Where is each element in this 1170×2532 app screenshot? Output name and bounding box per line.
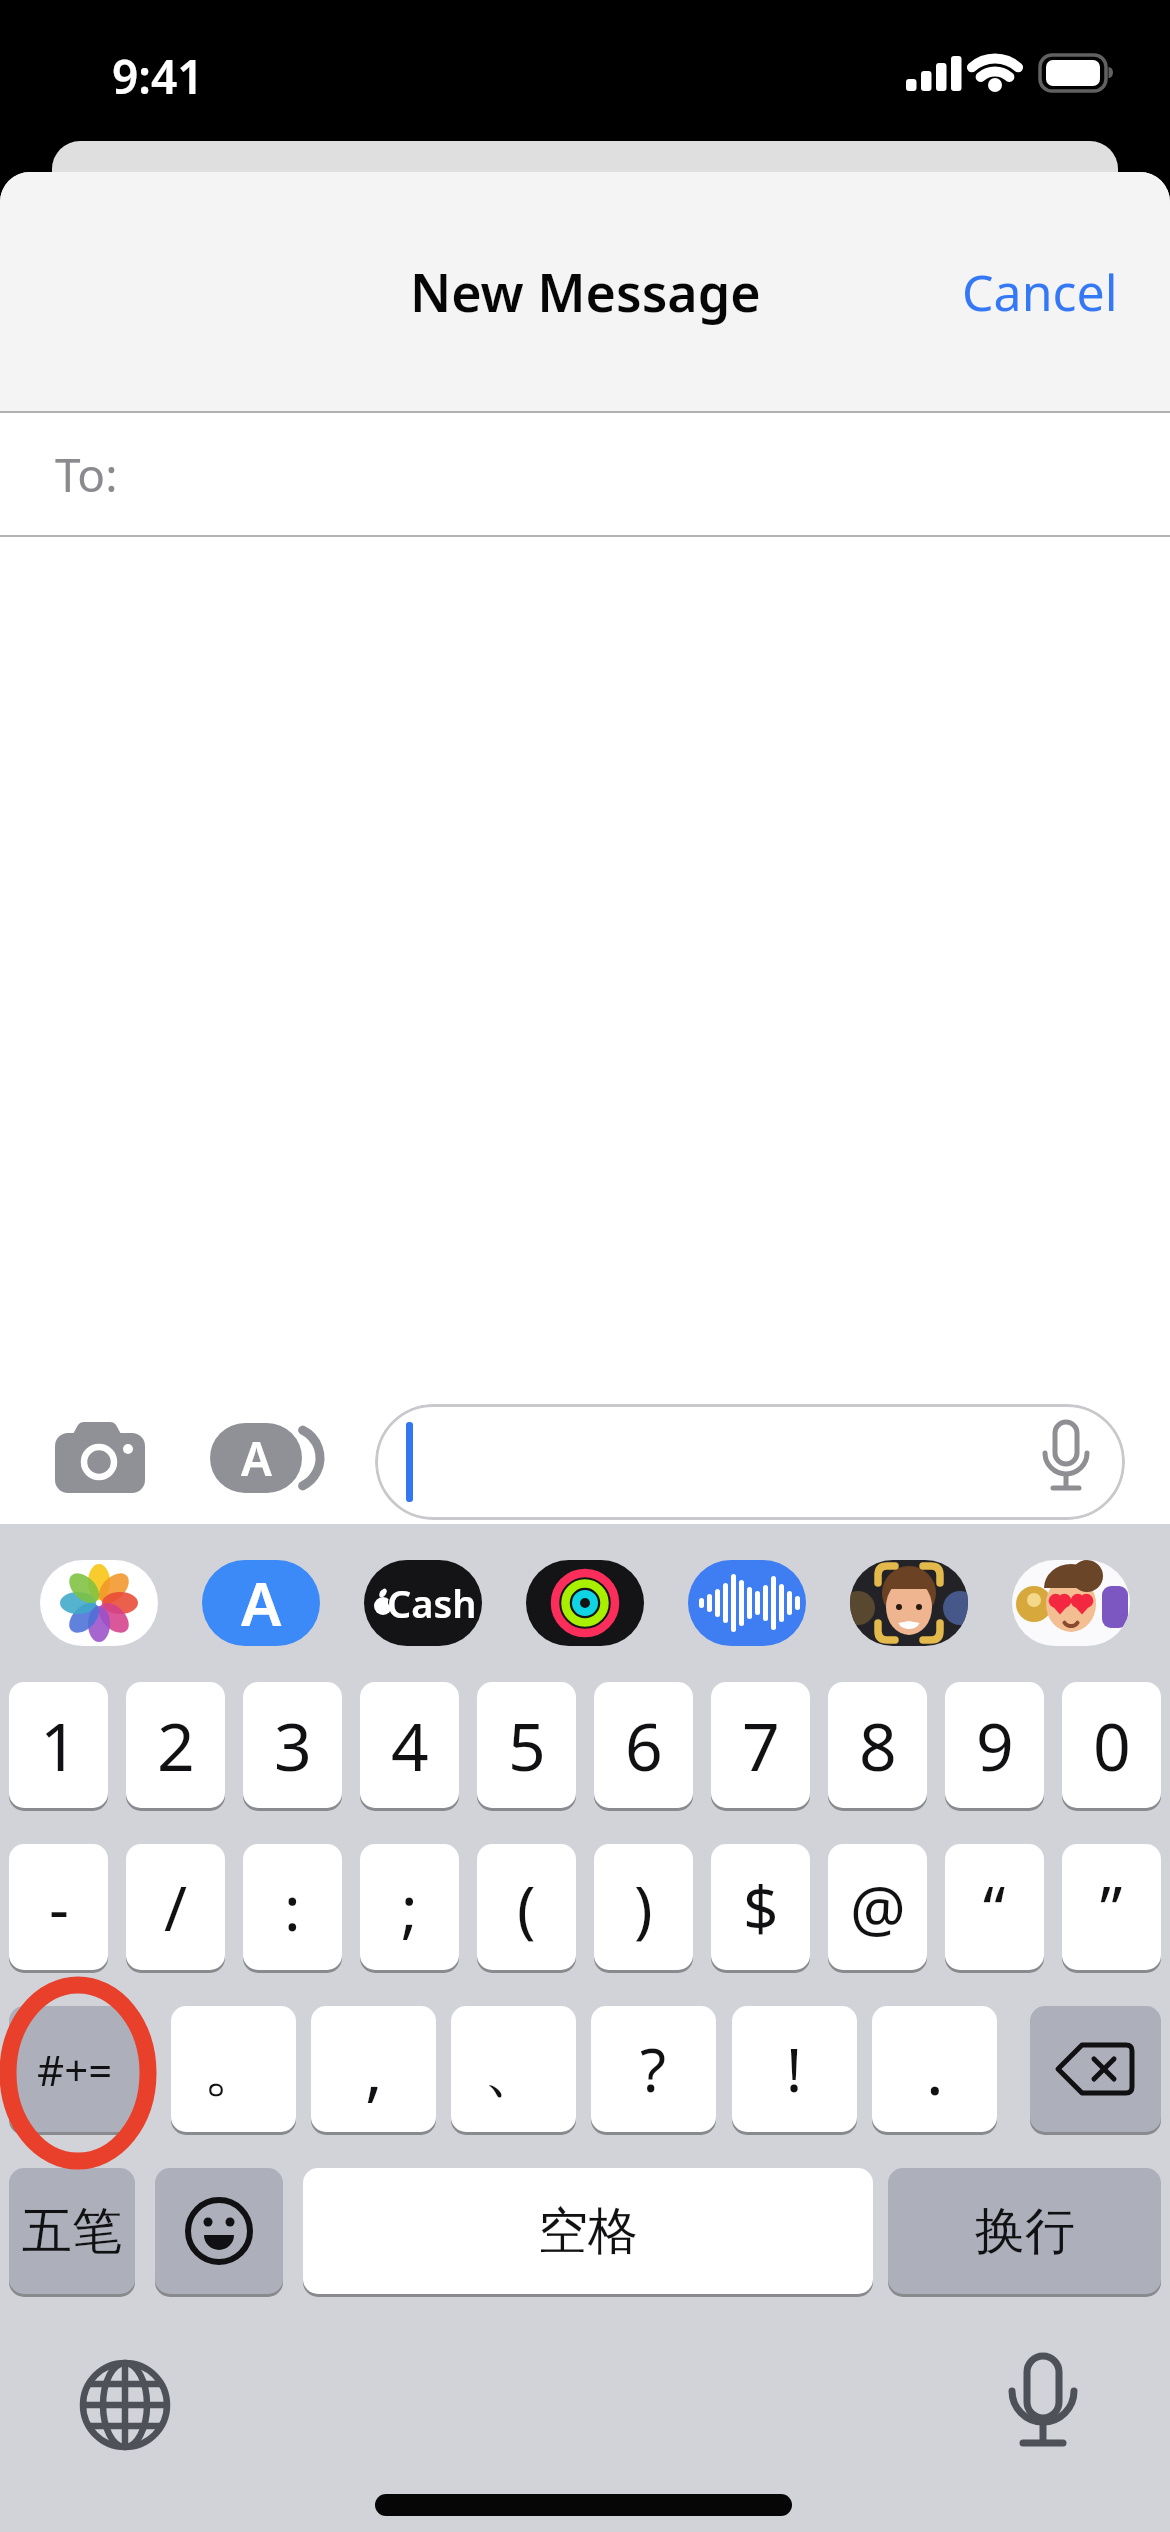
staticText: A (241, 1562, 282, 1644)
staticText: ; (401, 1865, 418, 1949)
button[interactable]: 9 (945, 1682, 1044, 1808)
staticText: ” (1100, 1865, 1123, 1949)
button[interactable] (375, 1404, 1125, 1520)
button[interactable] (1030, 2006, 1161, 2132)
staticText: 空格 (538, 2200, 638, 2263)
button[interactable] (850, 1560, 968, 1646)
button[interactable] (155, 2168, 283, 2294)
staticText: 5 (508, 1700, 546, 1790)
button[interactable]: Cash (364, 1560, 482, 1646)
button[interactable]: 0 (1062, 1682, 1161, 1808)
button[interactable]: A (202, 1560, 320, 1646)
button[interactable]: , (311, 2006, 436, 2132)
button[interactable] (47, 1416, 153, 1506)
staticText: $ (743, 1865, 779, 1949)
button[interactable]: “ (945, 1844, 1044, 1970)
staticText: #+= (37, 2041, 113, 2098)
button[interactable]: . (872, 2006, 997, 2132)
staticText: 9:41 (112, 45, 204, 108)
button[interactable] (995, 2352, 1091, 2456)
staticText: / (164, 1865, 188, 1949)
staticText: 、 (483, 2030, 545, 2108)
staticText: 五笔 (22, 2200, 122, 2263)
button[interactable]: $ (711, 1844, 810, 1970)
staticText: 换行 (975, 2200, 1075, 2263)
button[interactable]: 7 (711, 1682, 810, 1808)
staticText: ) (634, 1865, 653, 1949)
button[interactable]: 2 (126, 1682, 225, 1808)
button[interactable]: 。 (171, 2006, 296, 2132)
button[interactable]: #+= (9, 2006, 140, 2132)
button[interactable]: 3 (243, 1682, 342, 1808)
staticText: 0 (1093, 1700, 1131, 1790)
button[interactable]: - (9, 1844, 108, 1970)
staticText: , (365, 2024, 383, 2114)
staticText: A (241, 1427, 272, 1490)
button[interactable]: ? (591, 2006, 716, 2132)
button[interactable]: A (210, 1423, 320, 1493)
button[interactable]: @ (828, 1844, 927, 1970)
button[interactable]: 五笔 (9, 2168, 135, 2294)
button[interactable]: Cancel (962, 258, 1118, 326)
staticText: - (49, 1865, 69, 1949)
button[interactable]: 4 (360, 1682, 459, 1808)
button[interactable]: 、 (451, 2006, 576, 2132)
staticText: 。 (203, 2030, 265, 2108)
staticText: 1 (40, 1700, 78, 1790)
button[interactable]: : (243, 1844, 342, 1970)
button[interactable]: To: (0, 413, 1170, 535)
staticText: New Message (410, 256, 761, 327)
staticText: 9 (976, 1700, 1014, 1790)
staticText: : (284, 1865, 301, 1949)
staticText: ( (517, 1865, 536, 1949)
staticText: Cancel (962, 258, 1118, 326)
staticText: ? (640, 2028, 667, 2110)
button[interactable]: ” (1062, 1844, 1161, 1970)
button[interactable] (78, 2358, 172, 2452)
staticText: “ (983, 1865, 1006, 1949)
button[interactable]: ( (477, 1844, 576, 1970)
button[interactable] (688, 1560, 806, 1646)
button[interactable]: 空格 (303, 2168, 873, 2294)
button[interactable] (40, 1560, 158, 1646)
button[interactable] (526, 1560, 644, 1646)
button[interactable] (1012, 1560, 1130, 1646)
button[interactable]: 8 (828, 1682, 927, 1808)
staticText: @ (850, 1865, 906, 1949)
staticText: ! (786, 2028, 803, 2110)
button[interactable]: ; (360, 1844, 459, 1970)
staticText: . (926, 2024, 944, 2114)
button[interactable]: 换行 (888, 2168, 1161, 2294)
button[interactable]: / (126, 1844, 225, 1970)
staticText: 3 (274, 1700, 312, 1790)
staticText: Cash (387, 1577, 477, 1629)
staticText: 6 (625, 1700, 663, 1790)
button[interactable]: ) (594, 1844, 693, 1970)
staticText: 2 (157, 1700, 195, 1790)
button[interactable]: ! (732, 2006, 857, 2132)
staticText: 4 (391, 1700, 429, 1790)
button[interactable]: 6 (594, 1682, 693, 1808)
button[interactable]: 5 (477, 1682, 576, 1808)
staticText: 7 (742, 1700, 780, 1790)
staticText: 8 (859, 1700, 897, 1790)
staticText: To: (55, 443, 118, 506)
button[interactable]: 1 (9, 1682, 108, 1808)
